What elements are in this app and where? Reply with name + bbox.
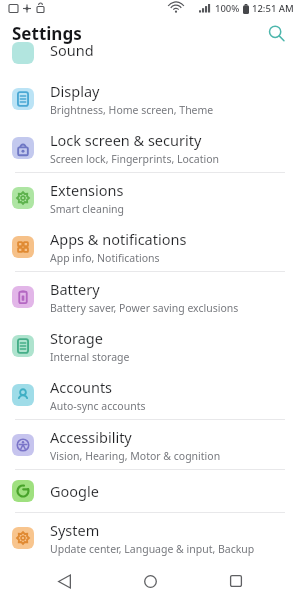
button[interactable]: System (0, 513, 300, 562)
staticText: Battery saver, Power saving exclusions (50, 301, 239, 315)
staticText: Smart cleaning (50, 202, 125, 216)
button[interactable]: Display (0, 74, 300, 123)
button[interactable]: Accessibility (0, 420, 300, 469)
button[interactable]: Back (42, 562, 86, 600)
staticText: Internal storage (50, 350, 130, 364)
staticText: 100% (215, 2, 240, 15)
staticText: 12:51 AM (252, 2, 294, 15)
staticText: Display (50, 81, 100, 101)
staticText: System (50, 520, 100, 540)
button[interactable]: Lock screen & security (0, 123, 300, 172)
button[interactable]: Search (262, 19, 290, 47)
staticText: Settings (12, 22, 82, 45)
button[interactable]: Sound (0, 49, 300, 74)
staticText: Accounts (50, 377, 113, 397)
button[interactable]: Accounts (0, 370, 300, 419)
staticText: Battery (50, 279, 100, 299)
button[interactable]: Storage (0, 321, 300, 370)
staticText: Storage (50, 328, 103, 348)
staticText: App info, Notifications (50, 251, 160, 265)
button[interactable]: Apps & notifications (0, 222, 300, 271)
button[interactable]: Home (128, 562, 172, 600)
staticText: Screen lock, Fingerprints, Location (50, 152, 220, 166)
staticText: Apps & notifications (50, 229, 187, 249)
staticText: Lock screen & security (50, 130, 202, 150)
staticText: Update center, Language & input, Backup (50, 542, 255, 556)
staticText: Brightness, Home screen, Theme (50, 103, 214, 117)
button[interactable]: Battery (0, 272, 300, 321)
button[interactable]: Google (0, 470, 300, 512)
staticText: Extensions (50, 180, 124, 200)
button[interactable]: Recents (214, 562, 258, 600)
button[interactable]: Extensions (0, 173, 300, 222)
staticText: Sound (50, 40, 94, 60)
staticText: Auto-sync accounts (50, 399, 146, 413)
staticText: Google (50, 481, 99, 501)
staticText: Vision, Hearing, Motor & cognition (50, 449, 221, 463)
staticText: Accessibility (50, 427, 132, 447)
